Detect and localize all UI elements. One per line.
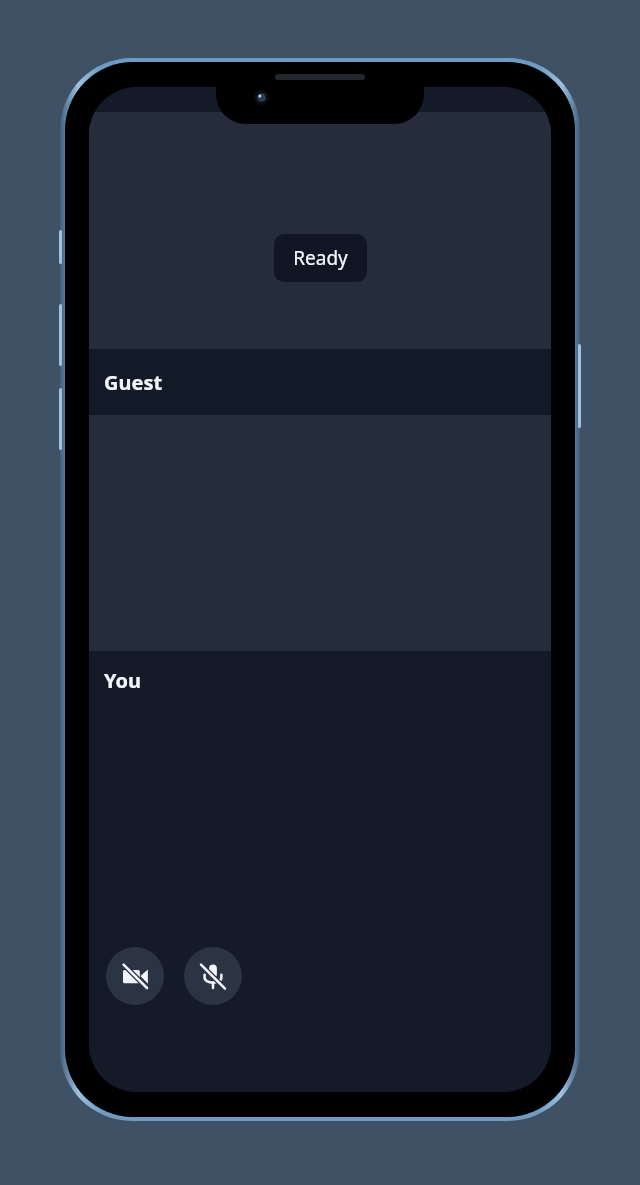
button[interactable]: Ready: [274, 234, 367, 282]
button[interactable]: Unmute microphone: [184, 947, 242, 1005]
staticText: Ready: [293, 245, 348, 271]
button[interactable]: Guest: [89, 349, 551, 415]
staticText: Guest: [104, 369, 163, 396]
button[interactable]: Turn camera on: [106, 947, 164, 1005]
staticText: You: [104, 667, 142, 694]
